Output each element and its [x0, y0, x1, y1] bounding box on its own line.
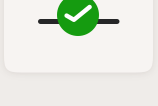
- button[interactable]: Step complete: [0, 0, 158, 106]
